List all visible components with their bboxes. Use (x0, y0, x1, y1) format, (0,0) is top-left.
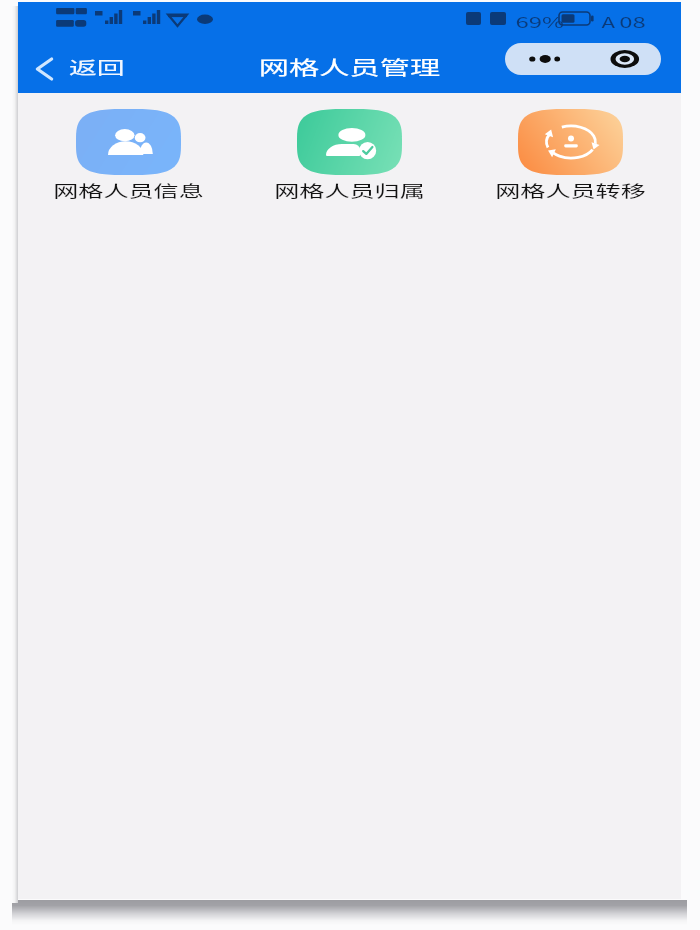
button[interactable]: 网格人员转移 (460, 109, 681, 202)
staticText: 返回 (69, 54, 125, 79)
staticText: 网格人员归属 (274, 179, 425, 202)
button[interactable]: More options (505, 43, 661, 75)
staticText: 网格人员管理 (258, 53, 441, 81)
button[interactable]: 网格人员信息 (18, 109, 239, 202)
staticText: 08 (619, 11, 646, 33)
staticText: 69% (515, 11, 564, 33)
button[interactable]: 返回 (28, 48, 114, 85)
staticText: A (601, 12, 615, 32)
staticText: 网格人员信息 (53, 179, 204, 202)
staticText: 网格人员转移 (495, 179, 646, 202)
button[interactable]: 网格人员归属 (239, 109, 460, 202)
